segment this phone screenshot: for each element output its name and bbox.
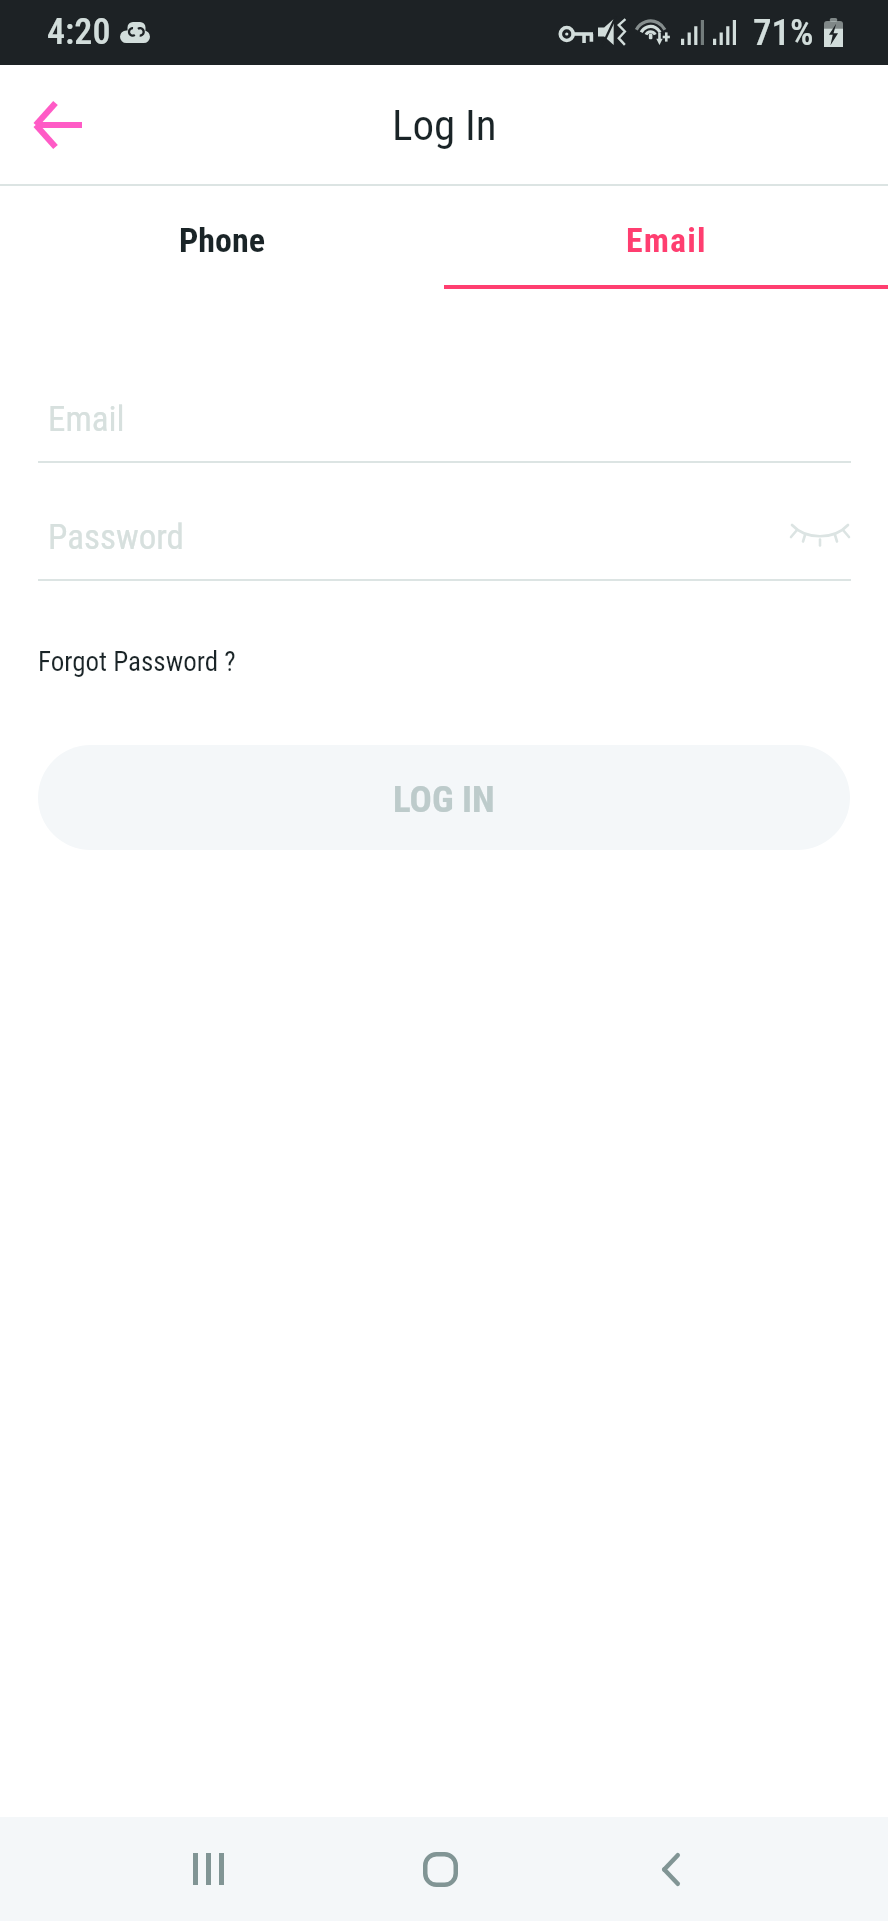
staticText: LOG IN (393, 778, 495, 821)
button[interactable]: Back (626, 1824, 716, 1914)
button[interactable]: Home (395, 1824, 485, 1914)
button[interactable]: Show password (782, 506, 858, 568)
button[interactable]: Password input (38, 513, 851, 580)
staticText: Phone (179, 220, 266, 260)
button[interactable]: LOG IN (38, 745, 850, 850)
button[interactable]: Phone (0, 186, 444, 288)
button[interactable]: Recent apps (163, 1824, 253, 1914)
staticText: Forgot Password ? (38, 646, 236, 678)
staticText: 4:20 (47, 11, 111, 53)
staticText: Log In (392, 100, 497, 150)
staticText: 71% (753, 11, 814, 54)
staticText: Email (48, 399, 125, 440)
button[interactable]: Email (444, 186, 888, 288)
staticText: Email (626, 220, 707, 260)
staticText: Password (48, 517, 184, 558)
button[interactable]: Back (23, 90, 93, 160)
button[interactable]: Email input (38, 395, 851, 462)
button[interactable]: Forgot Password ? (38, 642, 236, 688)
